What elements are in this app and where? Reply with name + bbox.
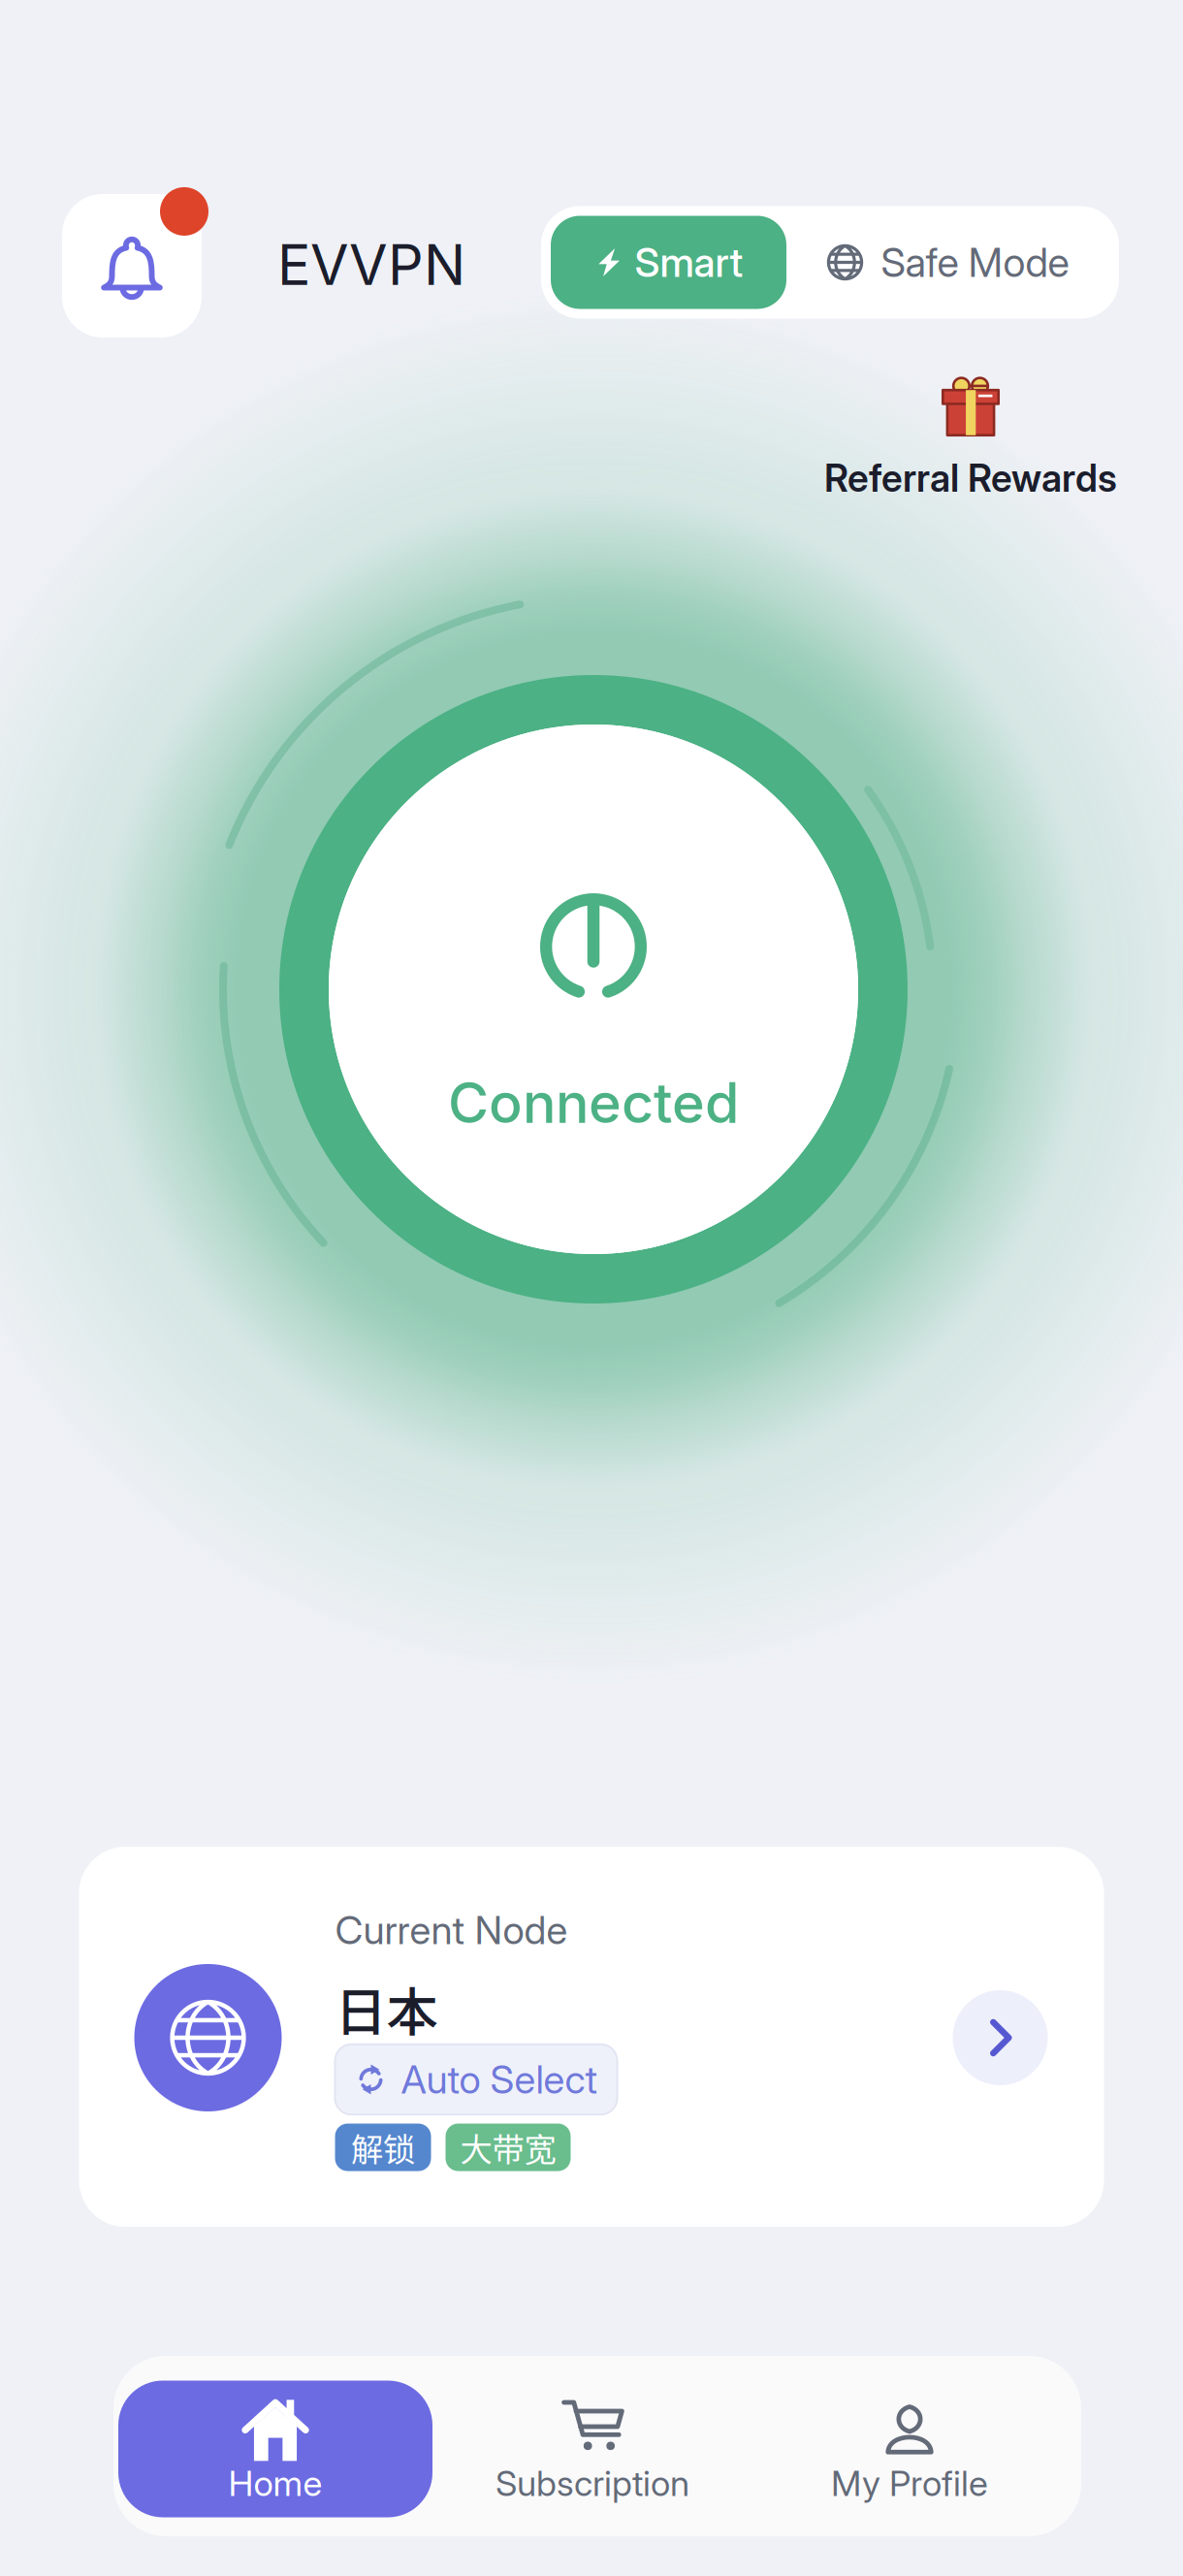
staticText: Referral Rewards bbox=[824, 455, 1117, 501]
staticText: Safe Mode bbox=[881, 238, 1069, 287]
staticText: Smart bbox=[635, 238, 743, 287]
button[interactable]: Home bbox=[118, 2381, 432, 2517]
staticText: Home bbox=[228, 2462, 322, 2505]
button[interactable]: Connected bbox=[279, 675, 908, 1304]
staticText: 日本 bbox=[335, 1971, 438, 2046]
button[interactable]: My Profile bbox=[752, 2381, 1067, 2517]
button[interactable]: Referral Rewards bbox=[815, 373, 1126, 519]
button[interactable]: Safe Mode bbox=[786, 216, 1109, 309]
staticText: EVVPN bbox=[277, 231, 465, 298]
staticText: Connected bbox=[448, 1069, 739, 1136]
staticText: 大带宽 bbox=[460, 2124, 556, 2171]
staticText: Auto Select bbox=[401, 2056, 598, 2103]
button[interactable]: Smart bbox=[551, 216, 786, 309]
staticText: Subscription bbox=[496, 2462, 689, 2505]
button[interactable]: Current Node bbox=[79, 1847, 1104, 2227]
staticText: Current Node bbox=[335, 1907, 568, 1954]
staticText: 解锁 bbox=[351, 2124, 415, 2171]
button[interactable]: Notifications bbox=[62, 188, 208, 338]
staticText: My Profile bbox=[831, 2462, 988, 2505]
button[interactable]: Subscription bbox=[435, 2381, 750, 2517]
